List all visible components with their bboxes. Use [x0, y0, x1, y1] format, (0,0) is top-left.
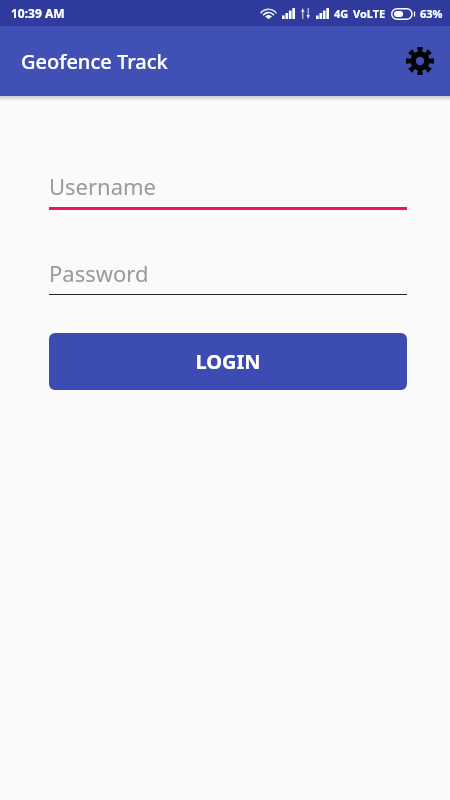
staticText: Geofence Track — [21, 48, 168, 75]
staticText: 10:39 AM — [11, 5, 65, 21]
staticText: Username — [49, 171, 157, 201]
button[interactable]: Password — [49, 256, 407, 295]
staticText: VoLTE — [353, 6, 386, 21]
staticText: 4G — [334, 6, 349, 21]
button[interactable]: LOGIN — [49, 333, 407, 390]
staticText: Password — [49, 258, 149, 288]
button[interactable]: Settings — [402, 43, 438, 79]
button[interactable]: Username — [49, 169, 407, 210]
staticText: 63% — [420, 6, 443, 21]
staticText: LOGIN — [195, 348, 261, 375]
